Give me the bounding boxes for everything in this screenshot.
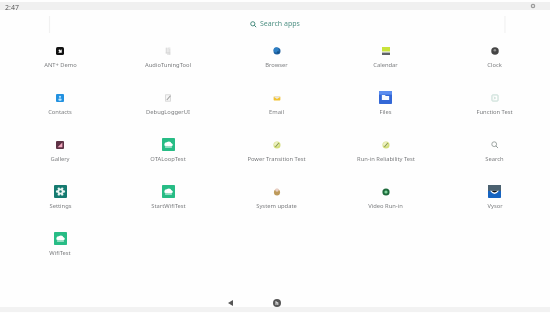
staticText: Video Run-in xyxy=(368,202,403,210)
staticText: 2:47 xyxy=(5,3,19,13)
button[interactable]: Home xyxy=(264,292,290,313)
button[interactable]: Clock xyxy=(440,42,549,89)
staticText: Gallery xyxy=(50,155,70,163)
button[interactable]: Search apps xyxy=(244,18,306,30)
staticText: DebugLoggerUI xyxy=(146,108,190,116)
button[interactable]: Power Transition Test xyxy=(222,136,331,183)
staticText: Calendar xyxy=(373,61,398,69)
staticText: Files xyxy=(379,108,392,116)
button[interactable]: Files xyxy=(331,89,440,136)
button[interactable]: Email xyxy=(222,89,331,136)
staticText: AudioTuningTool xyxy=(145,61,191,69)
button[interactable]: Video Run-in xyxy=(331,183,440,230)
staticText: Function Test xyxy=(476,108,513,116)
button[interactable]: Vysor xyxy=(440,183,549,230)
staticText: Browser xyxy=(265,61,288,69)
button[interactable]: AudioTuningTool xyxy=(114,42,222,89)
button[interactable]: Function Test xyxy=(440,89,549,136)
button[interactable]: StartWifiTest xyxy=(114,183,222,230)
staticText: Settings xyxy=(49,202,72,210)
button[interactable]: Run-in Reliability Test xyxy=(331,136,440,183)
button[interactable]: Contacts xyxy=(6,89,114,136)
button[interactable]: ANT+ Demo xyxy=(6,42,114,89)
staticText: OTALoopTest xyxy=(150,155,186,163)
staticText: WifiTest xyxy=(49,249,71,257)
button[interactable]: Calendar xyxy=(331,42,440,89)
button[interactable]: DebugLoggerUI xyxy=(114,89,222,136)
staticText: Run-in Reliability Test xyxy=(357,155,415,163)
staticText: Contacts xyxy=(48,108,72,116)
button[interactable]: Gallery xyxy=(6,136,114,183)
button[interactable]: Browser xyxy=(222,42,331,89)
staticText: System update xyxy=(256,202,297,210)
button[interactable]: System update xyxy=(222,183,331,230)
staticText: Vysor xyxy=(487,202,503,210)
staticText: Search xyxy=(485,155,504,163)
staticText: Email xyxy=(269,108,284,116)
staticText: Search apps xyxy=(260,19,300,29)
staticText: ANT+ Demo xyxy=(44,61,77,69)
button[interactable]: OTALoopTest xyxy=(114,136,222,183)
button[interactable]: Search xyxy=(440,136,549,183)
staticText: StartWifiTest xyxy=(151,202,186,210)
staticText: Power Transition Test xyxy=(247,155,306,163)
button[interactable]: Back xyxy=(217,292,243,313)
button[interactable]: WifiTest xyxy=(6,230,114,277)
staticText: Clock xyxy=(487,61,502,69)
button[interactable]: Settings xyxy=(6,183,114,230)
